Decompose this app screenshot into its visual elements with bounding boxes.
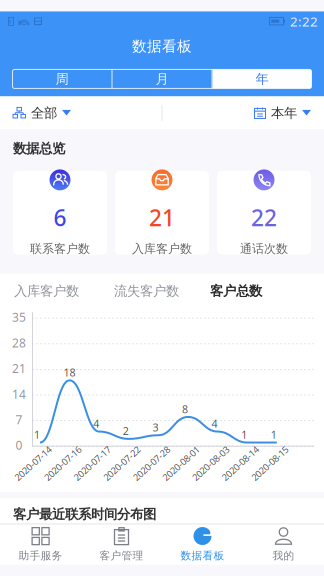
button[interactable]: 6	[13, 171, 107, 255]
button[interactable]: 助手服务	[0, 522, 81, 567]
staticText: 助手服务	[18, 549, 62, 562]
staticText: 1	[271, 427, 277, 442]
staticText: 7	[15, 412, 22, 427]
staticText: 数据看板	[132, 37, 192, 55]
staticText: 3	[152, 420, 158, 434]
staticText: 入库客户数	[14, 283, 79, 299]
button[interactable]: 数据看板	[162, 522, 243, 567]
button[interactable]: 年	[212, 69, 311, 88]
button[interactable]: 月	[112, 69, 211, 88]
staticText: 21	[149, 202, 175, 232]
staticText: 2	[123, 424, 129, 438]
staticText: 0	[15, 437, 22, 453]
staticText: 4	[93, 417, 99, 431]
staticText: 2:22	[290, 13, 318, 30]
staticText: 1	[241, 427, 247, 442]
staticText: 2020-08-01	[158, 457, 204, 470]
staticText: 14	[12, 386, 26, 402]
button[interactable]: 客户总数	[208, 283, 264, 299]
staticText: 2020-08-03	[188, 457, 234, 470]
staticText: 2020-08-15	[247, 457, 293, 470]
staticText: 年	[255, 71, 268, 87]
button[interactable]: 流失客户数	[112, 283, 181, 299]
button[interactable]: 我的	[243, 522, 324, 567]
staticText: 18	[64, 365, 76, 380]
staticText: 客户最近联系时间分布图	[13, 506, 156, 523]
button[interactable]: 周	[12, 69, 111, 88]
staticText: 2020-08-14	[217, 457, 263, 470]
button[interactable]: 入库客户数	[12, 283, 81, 299]
staticText: 客户管理	[99, 549, 143, 562]
button[interactable]: 全部	[0, 96, 161, 129]
staticText: 月	[155, 71, 168, 87]
staticText: 6	[53, 202, 66, 232]
staticText: 本年	[271, 105, 297, 121]
staticText: 我的	[272, 549, 294, 562]
staticText: 通话次数	[240, 241, 288, 256]
staticText: 入库客户数	[132, 241, 192, 256]
button[interactable]: 21	[115, 171, 209, 255]
staticText: 联系客户数	[30, 241, 90, 256]
staticText: 周	[55, 71, 68, 87]
staticText: 2020-07-14	[10, 457, 56, 470]
button[interactable]: 22	[217, 171, 311, 255]
staticText: 2020-07-17	[69, 457, 115, 470]
staticText: 数据看板	[180, 549, 224, 562]
staticText: 2020-07-22	[99, 457, 145, 470]
staticText: 8	[182, 402, 188, 416]
staticText: 数据总览	[13, 140, 65, 157]
staticText: 客户总数	[210, 283, 262, 299]
staticText: 流失客户数	[114, 283, 179, 299]
button[interactable]: 客户管理	[81, 522, 162, 567]
staticText: 全部	[31, 105, 57, 121]
staticText: 35	[12, 309, 26, 325]
staticText: 2020-07-28	[128, 457, 174, 470]
staticText: 4	[212, 417, 218, 431]
staticText: 2020-07-16	[40, 457, 86, 470]
staticText: 22	[251, 202, 277, 232]
staticText: 28	[12, 335, 26, 351]
button[interactable]: 本年	[162, 96, 324, 129]
staticText: 21	[12, 360, 26, 376]
staticText: 1	[34, 427, 40, 442]
